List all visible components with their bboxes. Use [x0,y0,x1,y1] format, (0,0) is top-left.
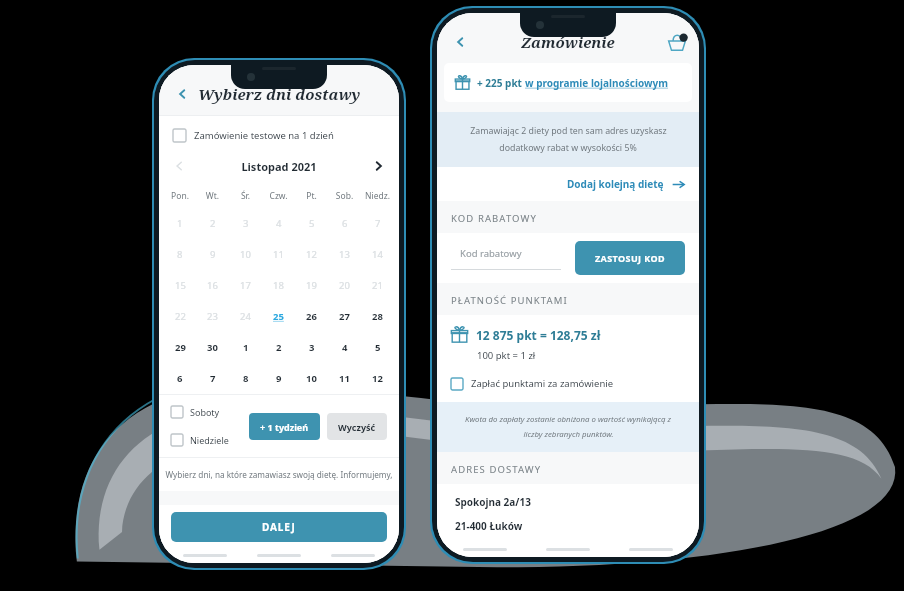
staticText: Zamówienie [521,32,615,52]
button[interactable]: 12 [361,363,394,394]
button[interactable]: 18 [262,270,295,301]
staticText: 1 [243,341,249,354]
staticText: 3 [243,217,249,230]
button[interactable]: 8 [164,239,196,270]
button[interactable]: DALEJ [171,512,387,542]
button[interactable]: ZASTOSUJ KOD [575,241,685,275]
staticText: 13 [339,248,350,261]
button[interactable]: 2 [196,208,229,239]
button[interactable]: 14 [361,239,394,270]
staticText: 28 [372,310,383,323]
staticText: Niedz. [361,190,394,202]
staticText: Zamówienie testowe na 1 dzień [194,129,334,142]
staticText: Wybierz dni, na które zamawiasz swoją di… [163,469,395,480]
staticText: 4 [276,217,282,230]
button[interactable]: 5 [295,208,328,239]
staticText: 2 [210,217,216,230]
button[interactable]: 3 [229,208,262,239]
staticText: 5 [309,217,315,230]
button[interactable]: 6 [328,208,361,239]
button[interactable]: 23 [196,301,229,332]
button[interactable]: Wyczyść [327,413,387,440]
button[interactable]: 12 [295,239,328,270]
button[interactable]: + 225 pkt [444,63,692,102]
button[interactable]: 1 [164,208,196,239]
button[interactable]: 8 [229,363,262,394]
staticText: 10 [306,372,317,385]
button[interactable]: 5 [361,332,394,363]
staticText: Czw. [262,190,295,202]
button[interactable]: 29 [164,332,196,363]
button[interactable]: 19 [295,270,328,301]
button[interactable]: 28 [361,301,394,332]
staticText: KOD RABATOWY [451,212,537,225]
button[interactable]: 16 [196,270,229,301]
button[interactable]: 11 [328,363,361,394]
staticText: 5 [375,341,381,354]
staticText: Soboty [190,406,220,418]
button[interactable]: 20 [328,270,361,301]
staticText: 7 [210,372,216,385]
staticText: 16 [207,279,218,292]
button[interactable]: 21 [361,270,394,301]
staticText: 8 [243,372,249,385]
staticText: 19 [306,279,317,292]
button[interactable]: 3 [295,332,328,363]
button[interactable]: Zapłać punktami za zamówienie [437,362,699,402]
button[interactable]: + 1 tydzień [249,413,320,440]
button[interactable]: Soboty [171,402,220,422]
staticText: 6 [342,217,348,230]
button[interactable]: Previous month [167,154,191,178]
button[interactable]: 7 [196,363,229,394]
button[interactable]: 4 [328,332,361,363]
button[interactable]: 1 [229,332,262,363]
staticText: Sob. [328,190,361,202]
staticText: Pon. [164,190,196,202]
staticText: Wyczyść [338,421,376,433]
staticText: Listopad 2021 [191,159,367,174]
button[interactable]: 6 [164,363,196,394]
button[interactable]: 7 [361,208,394,239]
button[interactable]: 13 [328,239,361,270]
staticText: Zapłać punktami za zamówienie [471,377,614,390]
button[interactable]: 24 [229,301,262,332]
button[interactable]: 2 [262,332,295,363]
button[interactable]: Back [167,79,197,109]
button[interactable]: 22 [164,301,196,332]
staticText: 25 [273,310,284,323]
button[interactable]: 30 [196,332,229,363]
staticText: 27 [339,310,350,323]
button[interactable]: 25 [262,301,295,332]
button[interactable]: 10 [229,239,262,270]
button[interactable]: 10 [295,363,328,394]
button[interactable]: 27 [328,301,361,332]
staticText: 4 [342,341,348,354]
staticText: 24 [240,310,251,323]
staticText: 21 [372,279,383,292]
staticText: 10 [240,248,251,261]
staticText: 14 [372,248,383,261]
staticText: 12 875 pkt = 128,75 zł [476,327,601,343]
staticText: Zamawiając 2 diety pod ten sam adres uzy… [470,125,667,137]
button[interactable]: 26 [295,301,328,332]
staticText: Dodaj kolejną dietę [567,177,664,191]
button[interactable]: Back [445,27,475,57]
button[interactable]: Niedziele [171,430,229,450]
staticText: ADRES DOSTAWY [451,463,542,476]
staticText: DALEJ [262,520,296,534]
button[interactable]: Kod rabatowy [451,247,569,270]
button[interactable]: 4 [262,208,295,239]
button[interactable]: Dodaj kolejną dietę [437,167,699,201]
staticText: Spokojna 2a/13 [455,495,531,509]
button[interactable]: Next month [367,154,391,178]
staticText: 30 [207,341,218,354]
button[interactable]: 15 [164,270,196,301]
button[interactable]: Cart [664,29,690,55]
button[interactable]: Zamówienie testowe na 1 dzień [159,116,399,148]
staticText: w programie lojalnościowym [525,76,669,90]
button[interactable]: 9 [262,363,295,394]
button[interactable]: 9 [196,239,229,270]
button[interactable]: 11 [262,239,295,270]
button[interactable]: 17 [229,270,262,301]
staticText: 6 [177,372,183,385]
